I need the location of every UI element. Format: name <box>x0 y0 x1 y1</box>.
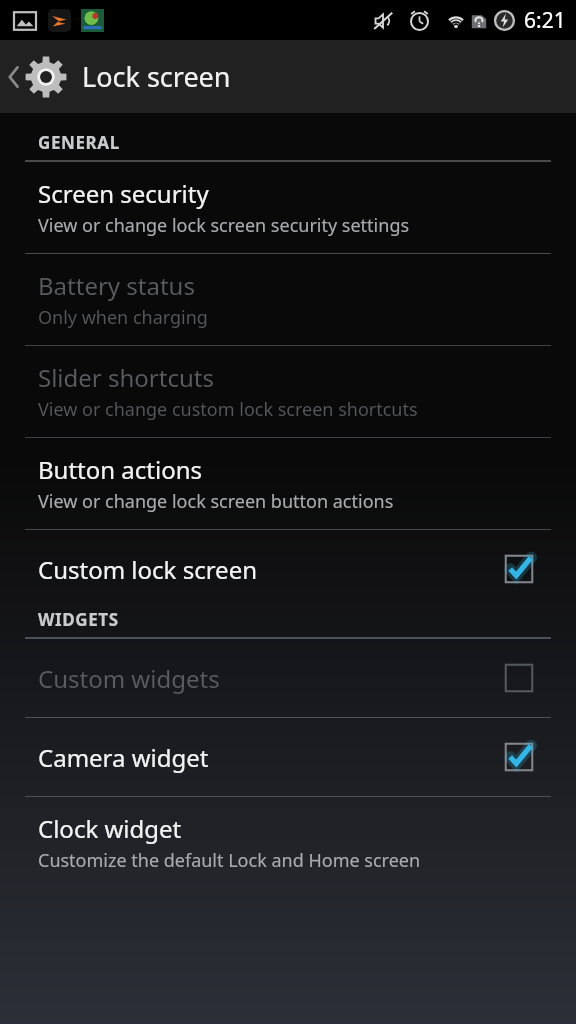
button[interactable]: Camera widget <box>0 718 576 796</box>
staticText: Battery status <box>38 269 195 302</box>
staticText: View or change lock screen security sett… <box>38 213 410 238</box>
staticText: Clock widget <box>38 812 182 845</box>
button[interactable]: Battery status <box>0 254 576 345</box>
staticText: Button actions <box>38 453 203 486</box>
other: Wi-Fi <box>444 9 468 33</box>
staticText: Screen security <box>38 177 209 210</box>
staticText: View or change lock screen button action… <box>38 489 394 514</box>
staticText: 6:21 <box>524 6 566 35</box>
staticText: Only when charging <box>38 305 208 330</box>
button[interactable]: Button actions <box>0 438 576 529</box>
staticText: Slider shortcuts <box>38 361 214 394</box>
staticText: Custom lock screen <box>38 553 502 586</box>
staticText: Lock screen <box>82 58 231 95</box>
staticText: WIDGETS <box>38 608 119 631</box>
staticText: View or change custom lock screen shortc… <box>38 397 418 422</box>
other: Charging <box>493 9 516 32</box>
button[interactable]: Screen security <box>0 162 576 253</box>
staticText: Custom widgets <box>38 662 502 695</box>
button[interactable]: Clock widget <box>0 797 576 888</box>
button[interactable]: Custom widgets <box>0 639 576 717</box>
other: Alarm set <box>408 9 431 32</box>
other: No SIM card <box>470 12 488 30</box>
button[interactable]: Custom lock screen <box>0 530 576 608</box>
other: Silent mode <box>372 10 394 32</box>
staticText: Camera widget <box>38 741 502 774</box>
button[interactable]: Navigate up <box>0 49 72 105</box>
staticText: GENERAL <box>38 131 120 154</box>
staticText: Customize the default Lock and Home scre… <box>38 848 421 873</box>
button[interactable]: Slider shortcuts <box>0 346 576 437</box>
